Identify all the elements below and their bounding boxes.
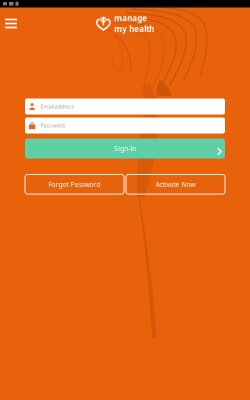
button[interactable]: Sign-In: [25, 138, 225, 158]
staticText: Sign-In: [114, 144, 136, 153]
staticText: Email address: [41, 103, 75, 110]
button[interactable]: Forgot Password: [25, 174, 124, 194]
button[interactable]: Menu: [0, 13, 26, 34]
staticText: Password: [41, 122, 65, 129]
button[interactable]: Activate Now: [126, 174, 225, 194]
staticText: Activate Now: [155, 180, 195, 189]
staticText: Forgot Password: [48, 180, 100, 189]
staticText: my health: [114, 23, 154, 34]
staticText: manage: [114, 13, 147, 23]
